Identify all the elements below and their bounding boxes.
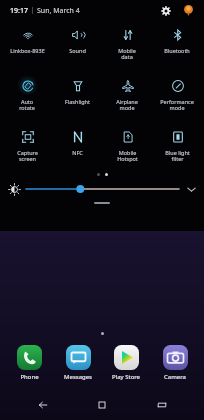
button[interactable]: Bluetooth [154, 24, 200, 54]
staticText: Blue light filter [165, 149, 190, 163]
staticText: Mobile Hotspot [117, 149, 138, 163]
button[interactable]: Brightness slider [26, 182, 179, 196]
staticText: Messages [64, 373, 92, 381]
staticText: Phone [20, 373, 39, 381]
button[interactable]: Sound [54, 24, 100, 54]
staticText: Performance mode [160, 98, 194, 112]
staticText: Bluetooth [164, 47, 190, 54]
button[interactable]: Settings [158, 3, 173, 18]
button[interactable]: Home [85, 390, 119, 420]
button[interactable]: Back [26, 390, 60, 420]
staticText: Linkbox-893E [10, 47, 45, 54]
button[interactable]: Mobile Hotspot [104, 126, 150, 163]
staticText: Sun, March 4 [37, 6, 80, 16]
button[interactable]: Blue light filter [154, 126, 200, 163]
button[interactable]: User profile [181, 3, 196, 18]
button[interactable]: Auto rotate [4, 75, 50, 112]
staticText: NFC [72, 149, 83, 156]
button[interactable]: Linkbox-893E [4, 24, 50, 54]
staticText: Mobile data [118, 47, 136, 61]
button[interactable]: Performance mode [154, 75, 200, 112]
button[interactable]: Capture screen [4, 126, 50, 163]
button[interactable]: Auto brightness [8, 183, 21, 196]
staticText: Auto rotate [19, 98, 35, 112]
staticText: Play Store [112, 373, 140, 381]
staticText: Camera [164, 373, 186, 381]
button[interactable]: Airplane mode [104, 75, 150, 112]
button[interactable]: Camera [152, 345, 198, 381]
button[interactable]: Play Store [103, 345, 149, 381]
button[interactable]: Flashlight [54, 75, 100, 105]
button[interactable]: Phone [6, 345, 52, 381]
staticText: Airplane mode [116, 98, 138, 112]
button[interactable]: Recent apps [145, 390, 179, 420]
button[interactable]: Messages [55, 345, 101, 381]
button[interactable]: Mobile data [104, 24, 150, 61]
staticText: Capture screen [17, 149, 38, 163]
button[interactable]: Expand brightness settings [185, 183, 198, 196]
staticText: 19:17 [10, 6, 28, 16]
button[interactable]: NFC [54, 126, 100, 156]
staticText: Flashlight [65, 98, 90, 105]
staticText: Sound [69, 47, 86, 54]
